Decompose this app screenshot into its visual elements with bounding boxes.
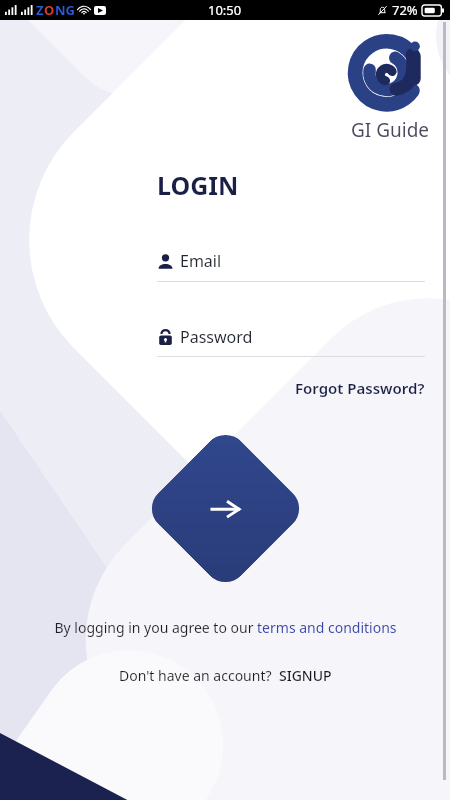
staticText: LOGIN [157,168,239,202]
staticText: O [44,1,55,19]
button[interactable]: Password [157,326,425,357]
button[interactable]: Login [143,426,308,591]
staticText: Z [36,1,44,19]
button[interactable]: Don't have an account? [115,664,336,687]
staticText: SIGNUP [279,666,332,685]
staticText: Don't have an account? [119,666,272,685]
staticText: Password [180,326,253,348]
staticText: Email [180,250,222,272]
staticText: GI Guide [351,117,430,143]
button[interactable]: Email [157,250,425,282]
button[interactable]: Forgot Password? [291,374,429,402]
staticText: NG [55,1,75,19]
staticText: 72% [392,1,418,19]
button[interactable]: By logging in you agree to our terms and… [50,618,401,637]
staticText: 10:50 [208,1,242,19]
